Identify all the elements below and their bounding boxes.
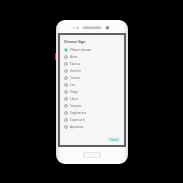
button[interactable]: Cancer [64, 74, 120, 81]
staticText: Choose Sign [64, 39, 86, 44]
staticText: Select [110, 138, 118, 142]
staticText: Virgo [70, 90, 78, 94]
staticText: Taurus [70, 62, 81, 66]
button[interactable]: Sagittarius [64, 109, 120, 116]
button[interactable]: Taurus [64, 60, 120, 67]
button[interactable]: Home [83, 152, 101, 158]
button[interactable]: Please choose [64, 46, 120, 53]
button[interactable]: Select [107, 137, 120, 142]
button[interactable]: Capricorn [64, 116, 120, 123]
staticText: Leo [70, 83, 76, 87]
staticText: Sagittarius [70, 111, 87, 115]
staticText: Aries [70, 55, 78, 59]
staticText: Aquarius [70, 125, 84, 129]
staticText: Libra [70, 97, 78, 101]
button[interactable]: Virgo [64, 88, 120, 95]
staticText: Please choose [70, 48, 92, 52]
button[interactable]: Scorpio [64, 102, 120, 109]
staticText: Cancer [70, 76, 81, 80]
staticText: Scorpio [70, 104, 82, 108]
staticText: Gemini [70, 69, 81, 73]
button[interactable]: Leo [64, 81, 120, 88]
button[interactable]: Libra [64, 95, 120, 102]
button[interactable]: Gemini [64, 67, 120, 74]
button[interactable]: Aries [64, 53, 120, 60]
button[interactable]: Aquarius [64, 123, 120, 130]
staticText: Capricorn [70, 118, 85, 122]
